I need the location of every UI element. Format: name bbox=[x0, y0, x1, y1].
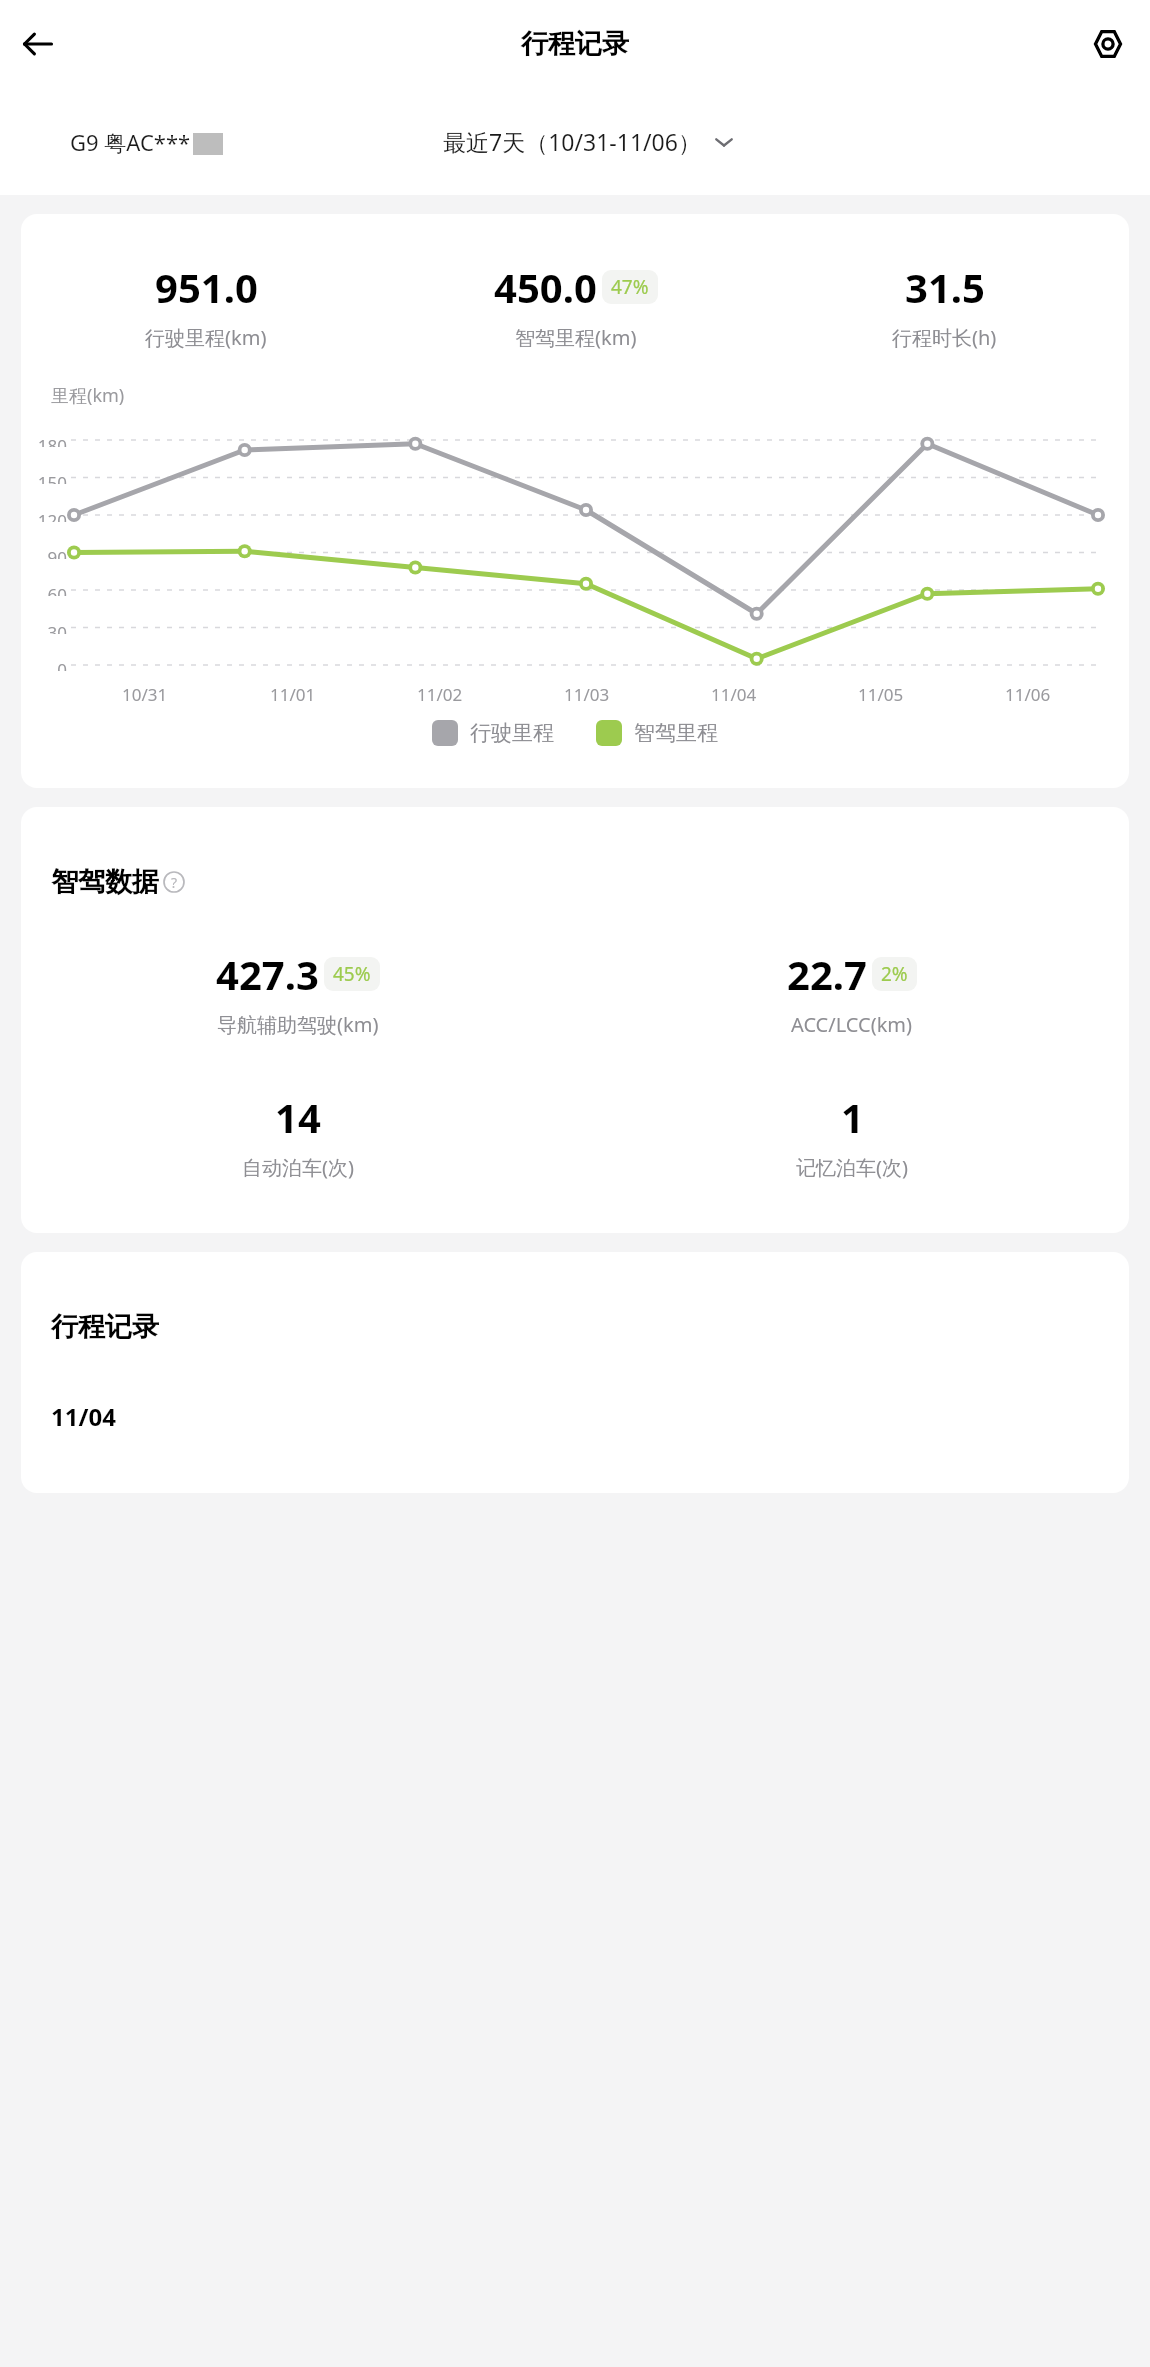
staticText: 导航辅助驾驶(km) bbox=[217, 1011, 379, 1038]
staticText: ? bbox=[171, 873, 178, 892]
staticText: 0 bbox=[57, 658, 67, 671]
button[interactable]: 最近7天（10/31-11/06） bbox=[443, 126, 735, 157]
staticText: 1 bbox=[841, 1090, 864, 1144]
button[interactable]: Back bbox=[6, 12, 70, 76]
staticText: 行驶里程 bbox=[470, 720, 554, 746]
staticText: 47% bbox=[611, 274, 649, 300]
staticText: 31.5 bbox=[905, 260, 985, 314]
staticText: 自动泊车(次) bbox=[242, 1154, 354, 1181]
staticText: 里程(km) bbox=[51, 383, 125, 408]
button[interactable]: Settings bbox=[1080, 16, 1136, 72]
staticText: 行驶里程(km) bbox=[145, 324, 267, 351]
staticText: 30 bbox=[47, 621, 67, 634]
staticText: G9 粤AC*** bbox=[70, 127, 191, 157]
staticText: 最近7天（10/31-11/06） bbox=[443, 126, 701, 157]
staticText: 11/06 bbox=[1005, 683, 1051, 706]
staticText: 记忆泊车(次) bbox=[796, 1154, 908, 1181]
staticText: 951.0 bbox=[155, 260, 258, 314]
button[interactable]: 帮助 bbox=[163, 871, 185, 893]
staticText: 120 bbox=[37, 509, 67, 522]
staticText: 450.0 bbox=[494, 260, 597, 314]
staticText: 行程记录 bbox=[521, 27, 629, 61]
button[interactable]: G9 粤AC*** bbox=[70, 127, 223, 157]
staticText: 11/05 bbox=[858, 683, 904, 706]
staticText: 90 bbox=[47, 546, 67, 559]
staticText: 11/01 bbox=[270, 683, 316, 706]
staticText: 11/03 bbox=[564, 683, 610, 706]
staticText: 11/04 bbox=[711, 683, 757, 706]
staticText: 22.7 bbox=[787, 947, 867, 1001]
staticText: 14 bbox=[275, 1090, 321, 1144]
staticText: 智驾里程(km) bbox=[515, 324, 637, 351]
staticText: 10/31 bbox=[122, 683, 168, 706]
staticText: 2% bbox=[881, 961, 908, 987]
staticText: 180 bbox=[37, 434, 67, 447]
staticText: 150 bbox=[37, 471, 67, 484]
staticText: 智驾数据 bbox=[51, 865, 159, 899]
staticText: 11/04 bbox=[51, 1400, 116, 1433]
staticText: 11/02 bbox=[417, 683, 463, 706]
staticText: 427.3 bbox=[216, 947, 319, 1001]
staticText: 60 bbox=[47, 583, 67, 596]
staticText: 45% bbox=[333, 961, 371, 987]
staticText: ACC/LCC(km) bbox=[791, 1011, 913, 1038]
staticText: 智驾里程 bbox=[634, 720, 718, 746]
staticText: 行程记录 bbox=[51, 1310, 159, 1344]
staticText: 行程时长(h) bbox=[892, 324, 997, 351]
